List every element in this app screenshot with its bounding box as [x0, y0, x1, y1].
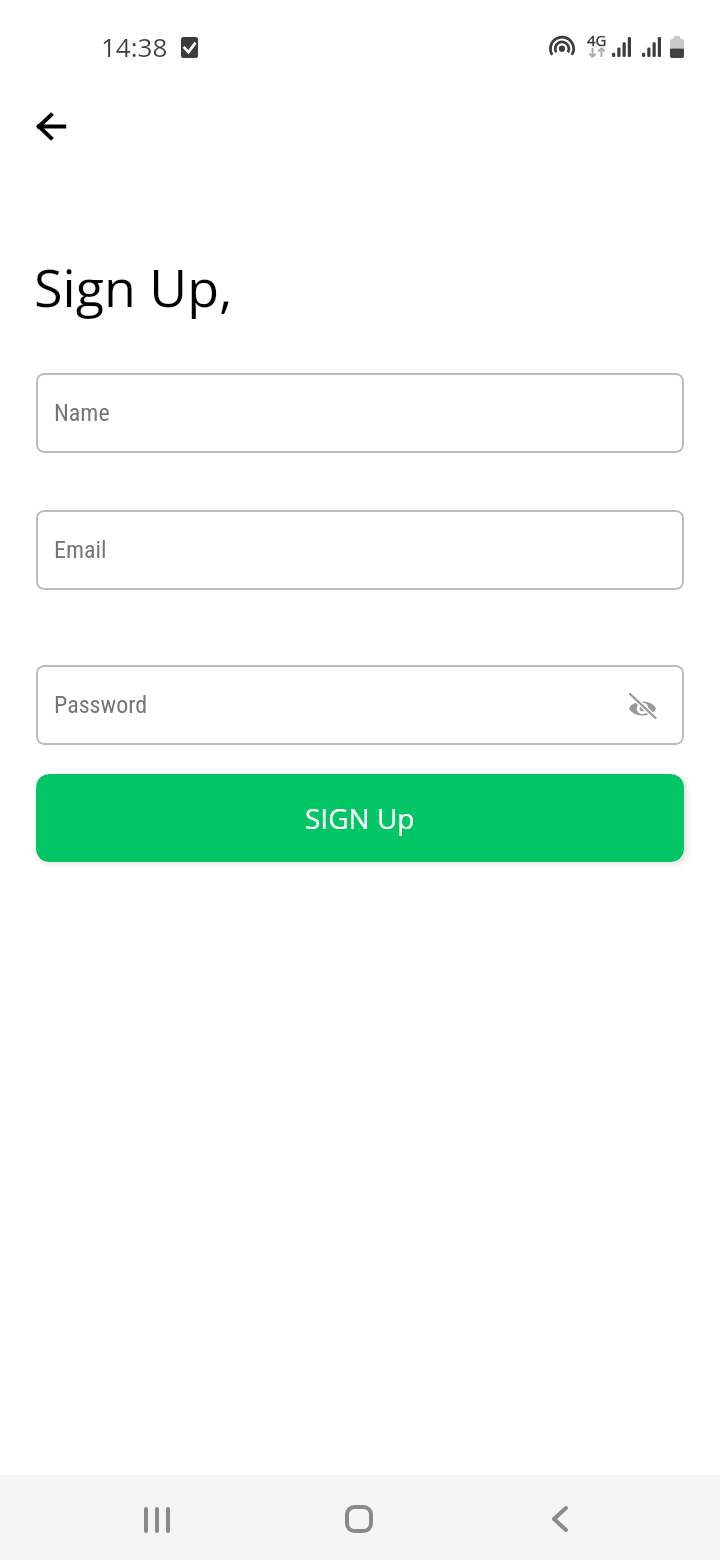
staticText: 14:38: [101, 29, 168, 64]
staticText: Sign Up,: [34, 251, 233, 322]
button[interactable]: Email: [36, 510, 684, 590]
button[interactable]: Name: [36, 373, 684, 453]
staticText: SIGN Up: [305, 799, 415, 837]
button[interactable]: SIGN Up: [36, 774, 684, 862]
button[interactable]: Recent apps: [117, 1481, 197, 1557]
staticText: Email: [54, 536, 107, 564]
button[interactable]: Home: [319, 1481, 399, 1557]
staticText: 4G: [587, 30, 607, 50]
button[interactable]: Back: [520, 1481, 600, 1557]
button[interactable]: Toggle password visibility: [620, 684, 664, 728]
button[interactable]: Password: [36, 665, 684, 745]
button[interactable]: Back: [23, 98, 79, 154]
staticText: Password: [54, 691, 148, 719]
staticText: Name: [54, 399, 110, 427]
